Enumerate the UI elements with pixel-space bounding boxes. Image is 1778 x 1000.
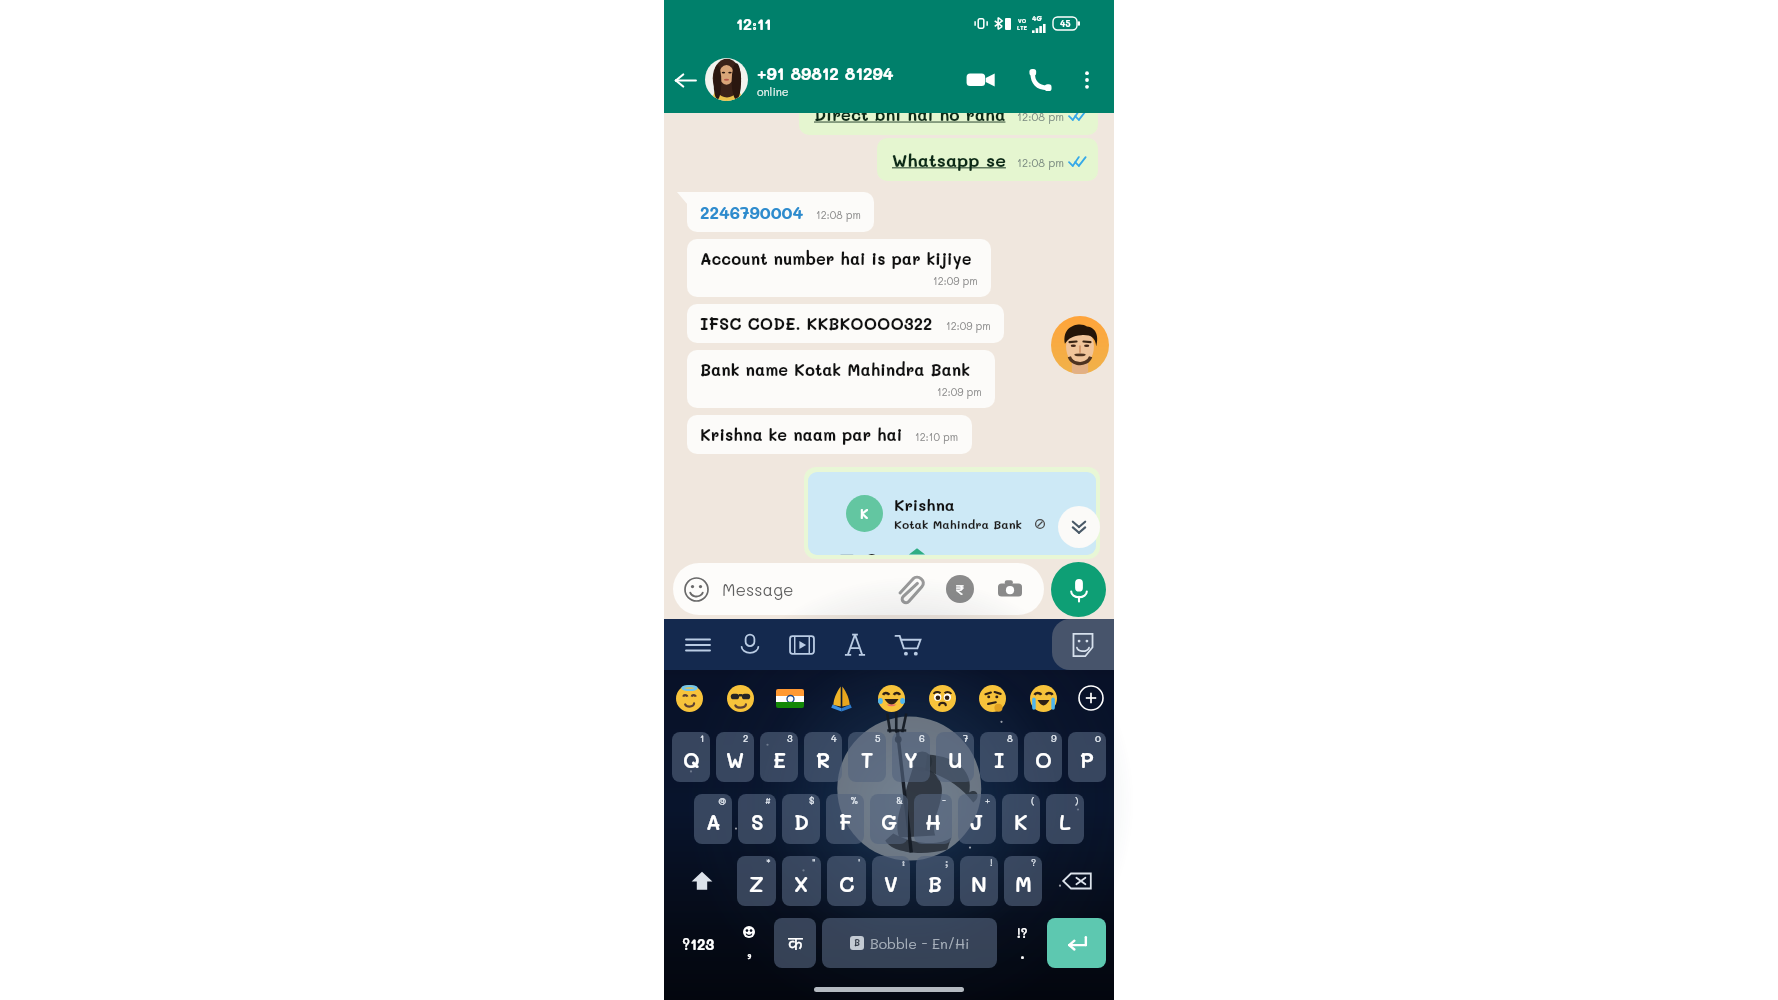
button[interactable]: Smiling face with sunglasses xyxy=(723,681,757,715)
button[interactable]: क xyxy=(774,918,816,968)
button[interactable]: Thinking face xyxy=(975,681,1009,715)
staticText: Message xyxy=(722,578,794,600)
staticText: ; xyxy=(945,856,949,868)
staticText: B xyxy=(854,937,861,949)
button[interactable]: ? xyxy=(1004,856,1042,906)
button[interactable] xyxy=(1047,918,1106,968)
staticText: H xyxy=(925,808,942,835)
button[interactable]: Direct bhi hai ho raha xyxy=(814,113,1086,125)
staticText: 5 xyxy=(875,732,881,744)
button[interactable]: K xyxy=(808,472,1096,555)
button[interactable]: Face with tears of joy xyxy=(874,681,908,715)
button[interactable]: Account number hai is par kijiye xyxy=(700,248,978,288)
button[interactable]: IFSC CODE. KKBKOOOO322 xyxy=(700,313,991,334)
button[interactable]: Message xyxy=(684,563,1024,615)
staticText: VO xyxy=(1018,17,1027,24)
staticText: 2 xyxy=(743,732,749,744)
staticText: !? xyxy=(1017,924,1028,941)
button[interactable]: Stickers xyxy=(1052,619,1114,670)
button[interactable]: 1 xyxy=(672,732,710,782)
button[interactable]: # xyxy=(738,794,776,844)
button[interactable]: , xyxy=(730,918,768,968)
button[interactable]: Scroll to bottom xyxy=(1058,506,1100,548)
button[interactable]: " xyxy=(782,856,821,906)
button[interactable]: More emoji xyxy=(1076,683,1106,713)
button[interactable]: Bank name Kotak Mahindra Bank xyxy=(700,359,982,399)
button[interactable] xyxy=(1048,856,1106,906)
button[interactable]: Payment xyxy=(946,575,974,603)
button[interactable]: More options xyxy=(1073,66,1101,94)
staticText: K xyxy=(860,505,869,522)
button[interactable]: % xyxy=(826,794,864,844)
staticText: 12:08 pm xyxy=(1017,113,1064,123)
button[interactable]: Loudly crying face xyxy=(1026,681,1060,715)
button[interactable]: Attach xyxy=(894,574,924,604)
staticText: @ xyxy=(718,794,727,806)
button[interactable]: ?123 xyxy=(672,918,724,968)
button[interactable]: Text style xyxy=(834,624,876,666)
staticText: ? xyxy=(1031,856,1037,868)
button[interactable]: Shop xyxy=(887,624,929,666)
button[interactable]: Voice message xyxy=(1051,562,1106,617)
button[interactable]: Pleading face xyxy=(925,681,959,715)
button[interactable]: 2 xyxy=(716,732,754,782)
staticText: 2246790004 xyxy=(700,201,804,223)
staticText: ₹ xyxy=(955,580,965,598)
button[interactable]: - xyxy=(914,794,952,844)
button[interactable]: 8 xyxy=(980,732,1018,782)
button[interactable]: $ xyxy=(782,794,820,844)
button[interactable]: 5 xyxy=(848,732,886,782)
button[interactable]: ( xyxy=(1002,794,1040,844)
button[interactable]: Video call xyxy=(960,60,1000,100)
button[interactable]: Back xyxy=(669,64,701,96)
button[interactable]: Krishna ke naam par hai xyxy=(700,424,959,445)
staticText: O xyxy=(1035,746,1052,773)
staticText: " xyxy=(812,856,816,868)
button[interactable]: ! xyxy=(960,856,998,906)
button[interactable]: Whatsapp se xyxy=(892,148,1086,171)
button[interactable]: & xyxy=(870,794,908,844)
button[interactable]: 4 xyxy=(804,732,842,782)
staticText: G xyxy=(881,808,897,835)
button[interactable]: India flag xyxy=(773,681,807,715)
button[interactable]: Contact photo xyxy=(1051,316,1109,374)
button[interactable]: Voice input xyxy=(729,624,771,666)
button[interactable]: Menu xyxy=(677,624,719,666)
button[interactable]: 6 xyxy=(892,732,930,782)
button[interactable]: Smiling face with halo xyxy=(672,681,706,715)
button[interactable]: 3 xyxy=(760,732,798,782)
staticText: 9 xyxy=(1051,732,1057,744)
button[interactable]: 7 xyxy=(936,732,974,782)
staticText: 12:10 pm xyxy=(915,430,959,444)
button[interactable]: @ xyxy=(694,794,732,844)
staticText: V xyxy=(884,870,898,897)
button[interactable]: Voice call xyxy=(1020,60,1060,100)
button[interactable]: ; xyxy=(916,856,954,906)
staticText: क xyxy=(788,930,803,956)
button[interactable]: +91 89812 81294 xyxy=(705,58,960,101)
staticText: 8 xyxy=(1007,732,1013,744)
button[interactable]: B xyxy=(822,918,997,968)
staticText: K xyxy=(1014,808,1028,835)
staticText: . xyxy=(1020,942,1025,963)
button[interactable]: ) xyxy=(1046,794,1084,844)
button[interactable]: 9 xyxy=(1024,732,1062,782)
button[interactable] xyxy=(672,856,731,906)
button[interactable]: ' xyxy=(827,856,866,906)
button[interactable]: 2246790004 xyxy=(700,201,861,223)
staticText: & xyxy=(896,794,903,806)
staticText: I xyxy=(994,746,1005,773)
staticText: N xyxy=(971,870,987,897)
button[interactable]: Folded hands xyxy=(824,681,858,715)
button[interactable]: 0 xyxy=(1068,732,1106,782)
staticText: ) xyxy=(1075,794,1079,806)
button[interactable]: * xyxy=(737,856,776,906)
button[interactable]: !? xyxy=(1003,918,1041,968)
staticText: ( xyxy=(1031,794,1035,806)
staticText: ! xyxy=(990,856,993,868)
button[interactable]: : xyxy=(872,856,910,906)
staticText: 1 xyxy=(700,732,705,744)
button[interactable]: + xyxy=(958,794,996,844)
button[interactable]: GIF xyxy=(781,624,823,666)
button[interactable]: Camera xyxy=(996,575,1024,603)
